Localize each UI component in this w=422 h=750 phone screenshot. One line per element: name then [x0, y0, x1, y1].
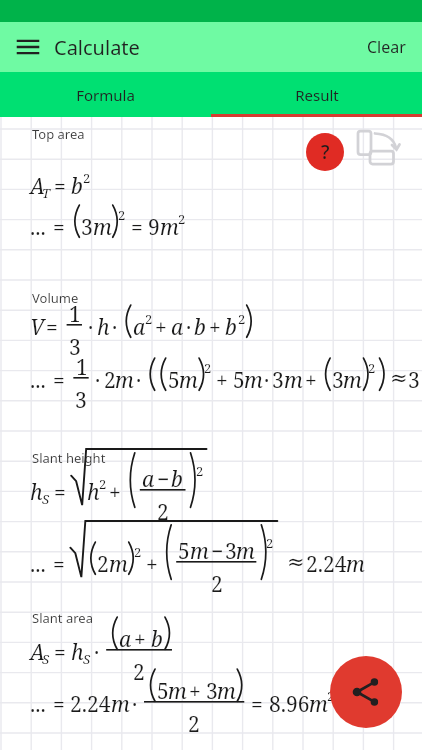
staticText: b	[71, 172, 83, 201]
staticText: 3	[225, 537, 237, 566]
staticText: 2	[97, 550, 109, 579]
button[interactable]: Share	[330, 656, 402, 728]
staticText: 2	[99, 475, 107, 493]
staticText: ...	[30, 213, 46, 242]
staticText: m	[309, 690, 328, 719]
staticText: ?	[321, 139, 330, 165]
staticText: A	[30, 638, 45, 667]
button[interactable]: Rotate screen	[355, 128, 405, 178]
staticText: 9	[148, 213, 160, 242]
staticText: 2	[211, 570, 223, 599]
staticText: b	[151, 625, 163, 654]
staticText: h	[97, 313, 110, 342]
staticText: h	[87, 478, 100, 507]
staticText: 3	[272, 366, 284, 395]
staticText: Slant area	[32, 609, 93, 627]
staticText: 2	[204, 359, 212, 377]
staticText: b	[194, 313, 206, 342]
staticText: =	[53, 366, 65, 395]
staticText: =	[53, 690, 65, 719]
staticText: 3	[81, 213, 93, 242]
staticText: a	[119, 625, 132, 654]
staticText: 3	[69, 333, 81, 362]
staticText: −	[211, 537, 224, 566]
staticText: +	[109, 478, 121, 507]
staticText: −	[157, 465, 170, 494]
staticText: 5	[233, 366, 245, 395]
staticText: ·	[136, 366, 142, 395]
staticText: A	[30, 172, 45, 201]
staticText: 2	[266, 534, 274, 552]
staticText: +	[146, 550, 158, 579]
staticText: Formula	[76, 85, 135, 105]
staticText: m	[93, 213, 112, 242]
staticText: b	[171, 465, 183, 494]
staticText: 2	[134, 543, 142, 561]
staticText: Calculate	[54, 34, 140, 61]
staticText: m	[343, 366, 362, 395]
staticText: 3	[408, 366, 420, 395]
staticText: 5	[157, 677, 169, 706]
staticText: 2	[133, 658, 145, 687]
staticText: ...	[30, 550, 46, 579]
staticText: 2	[196, 462, 204, 480]
staticText: ·	[112, 313, 118, 342]
staticText: 2.24	[70, 690, 111, 719]
staticText: 2	[157, 498, 169, 527]
staticText: S	[42, 650, 50, 668]
staticText: a	[142, 465, 155, 494]
staticText: ·	[94, 638, 100, 667]
staticText: ·	[186, 313, 192, 342]
staticText: a	[171, 313, 184, 342]
staticText: =	[46, 313, 58, 342]
staticText: +	[305, 366, 317, 395]
staticText: b	[225, 313, 237, 342]
staticText: 2	[104, 366, 116, 395]
staticText: ...	[30, 690, 46, 719]
staticText: =	[54, 638, 66, 667]
staticText: h	[71, 638, 84, 667]
staticText: 1	[76, 353, 88, 382]
staticText: ≈	[287, 550, 305, 574]
staticText: S	[42, 490, 50, 508]
staticText: +	[155, 313, 167, 342]
button[interactable]: Result	[211, 72, 422, 117]
staticText: Top area	[32, 125, 85, 143]
staticText: m	[168, 677, 187, 706]
button[interactable]: Formula	[0, 72, 211, 117]
staticText: m	[179, 366, 198, 395]
staticText: m	[236, 537, 255, 566]
staticText: ·	[88, 313, 94, 342]
button[interactable]: Help	[306, 133, 344, 171]
staticText: Volume	[32, 289, 79, 307]
staticText: 2	[327, 687, 335, 705]
staticText: +	[189, 677, 201, 706]
staticText: m	[244, 366, 263, 395]
staticText: 2	[238, 310, 246, 328]
staticText: =	[53, 550, 65, 579]
staticText: m	[111, 690, 130, 719]
staticText: Slant height	[32, 449, 106, 467]
button[interactable]: Clear	[355, 28, 418, 66]
staticText: 2	[368, 359, 376, 377]
staticText: 3	[75, 386, 87, 415]
staticText: ·	[264, 366, 270, 395]
staticText: 2.24	[306, 550, 347, 579]
staticText: +	[216, 366, 228, 395]
staticText: ·	[95, 366, 101, 395]
staticText: 2	[83, 169, 91, 187]
button[interactable]: Open navigation menu	[8, 27, 48, 67]
staticText: S	[83, 650, 91, 668]
staticText: +	[134, 625, 146, 654]
staticText: V	[30, 313, 45, 342]
staticText: 1	[69, 300, 81, 329]
staticText: T	[42, 184, 50, 202]
staticText: =	[54, 172, 66, 201]
staticText: 5	[178, 537, 190, 566]
staticText: =	[53, 213, 65, 242]
staticText: m	[115, 366, 134, 395]
staticText: ≈	[390, 366, 408, 390]
staticText: Result	[295, 85, 339, 105]
staticText: m	[346, 550, 365, 579]
staticText: =	[54, 478, 66, 507]
